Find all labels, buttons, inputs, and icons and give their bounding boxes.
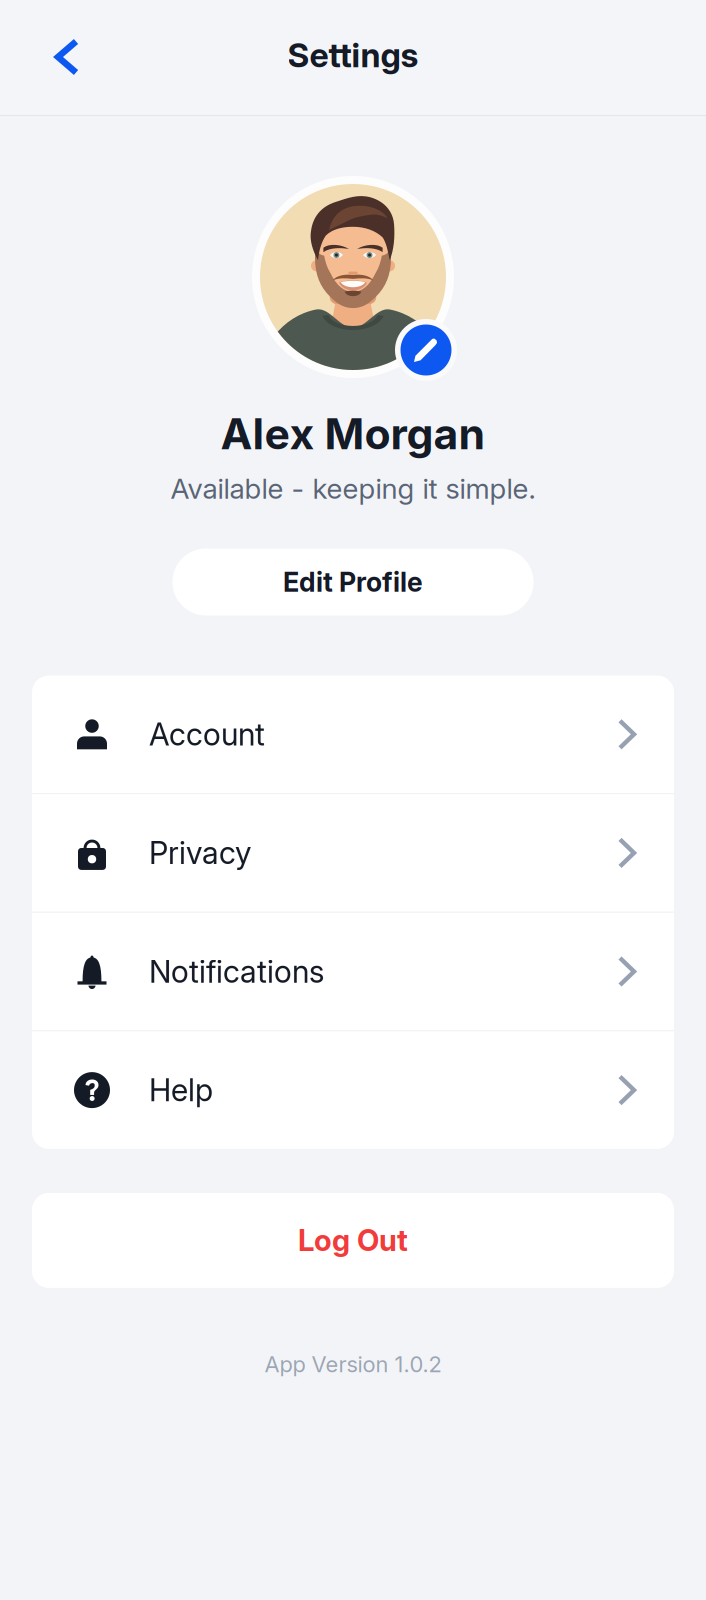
staticText: Privacy: [149, 834, 251, 871]
staticText: App Version 1.0.2: [264, 1351, 441, 1377]
button[interactable]: Notifications: [32, 913, 674, 1030]
button[interactable]: Edit Profile: [172, 548, 533, 615]
staticText: Edit Profile: [283, 566, 423, 598]
staticText: Settings: [287, 35, 418, 75]
staticText: Log Out: [298, 1223, 408, 1258]
button[interactable]: Edit profile photo: [395, 319, 457, 381]
button[interactable]: Back: [0, 14, 108, 99]
button[interactable]: Privacy: [32, 794, 674, 912]
button[interactable]: Account: [32, 675, 674, 793]
staticText: Available - keeping it simple.: [170, 472, 535, 505]
staticText: Account: [149, 716, 265, 753]
staticText: Alex Morgan: [220, 408, 485, 460]
button[interactable]: Help: [32, 1031, 674, 1149]
button[interactable]: Log Out: [32, 1193, 674, 1288]
staticText: Notifications: [149, 953, 324, 990]
staticText: Help: [149, 1072, 213, 1109]
